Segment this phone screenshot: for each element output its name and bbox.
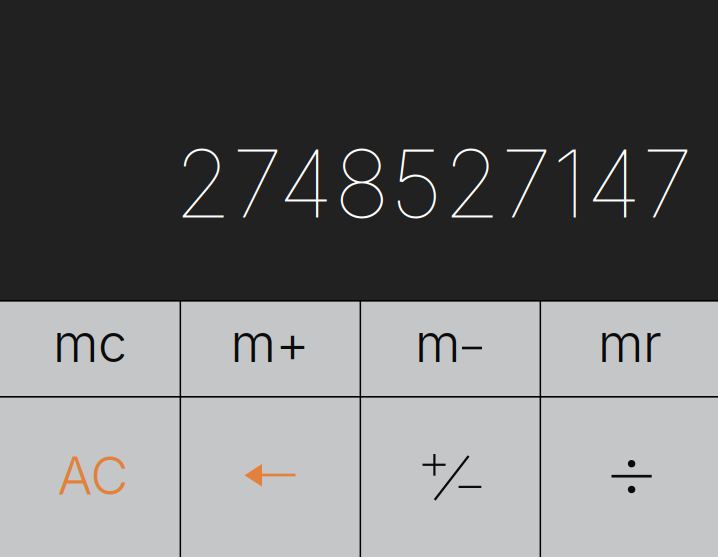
- button[interactable]: mr: [540, 300, 718, 396]
- button[interactable]: Plus Minus: [360, 396, 540, 551]
- button[interactable]: Divide: [540, 396, 718, 551]
- staticText: mc: [53, 311, 127, 374]
- button[interactable]: m minus: [360, 300, 540, 396]
- staticText: 2748527147: [174, 127, 693, 240]
- staticText: AC: [57, 444, 128, 507]
- button[interactable]: mc: [0, 300, 180, 396]
- button[interactable]: All Clear: [0, 396, 180, 551]
- staticText: m: [415, 311, 460, 374]
- staticText: mr: [598, 311, 662, 374]
- button[interactable]: Backspace: [180, 396, 360, 551]
- button[interactable]: m+: [180, 300, 360, 396]
- staticText: m+: [230, 311, 309, 374]
